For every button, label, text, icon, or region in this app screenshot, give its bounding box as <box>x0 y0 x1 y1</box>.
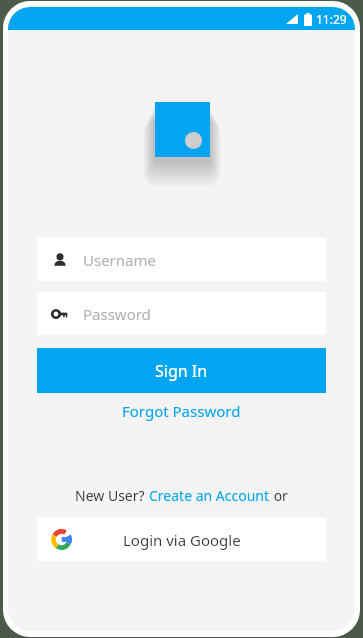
staticText: Password <box>83 304 151 324</box>
staticText: 11:29 <box>316 11 347 27</box>
staticText: Sign In <box>155 360 208 382</box>
staticText: Create an Account <box>149 486 270 505</box>
button[interactable]: Login via Google <box>37 518 326 561</box>
staticText: Username <box>83 250 156 270</box>
staticText: or <box>270 486 288 505</box>
button[interactable]: Sign In <box>37 348 326 393</box>
staticText: New User? <box>75 486 149 505</box>
button[interactable]: Create an Account <box>149 486 270 505</box>
staticText: Forgot Password <box>122 401 241 421</box>
button[interactable]: Username <box>37 238 326 281</box>
staticText: Login via Google <box>123 530 241 550</box>
button[interactable]: Password <box>37 292 326 335</box>
button[interactable]: Forgot Password <box>37 393 326 429</box>
